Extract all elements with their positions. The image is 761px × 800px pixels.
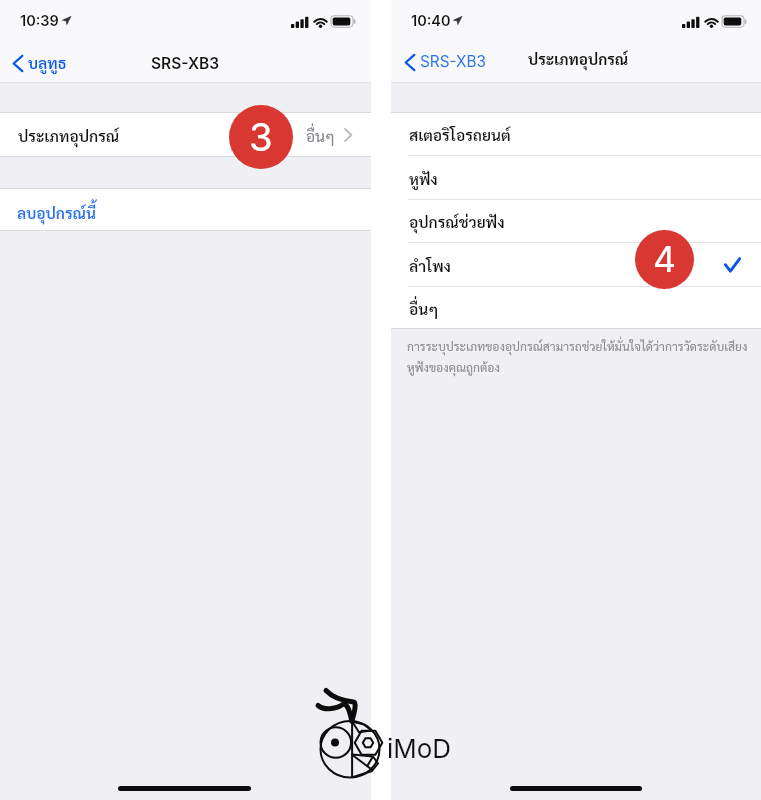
staticText: ประเภทอุปกรณ์ [528, 49, 629, 69]
button[interactable]: หูฟัง [391, 156, 761, 200]
button[interactable]: ลำโพง [391, 243, 761, 287]
other: Selected [725, 258, 740, 272]
staticText: 10:40 [411, 12, 451, 30]
staticText: iMoD [387, 733, 452, 764]
staticText: SRS-XB3 [151, 54, 220, 73]
button[interactable]: Back to บลูทูธ [0, 41, 78, 82]
button[interactable]: Back to SRS-XB3 [391, 41, 491, 82]
button[interactable]: อุปกรณ์ช่วยฟัง [391, 199, 761, 243]
button[interactable]: ประเภทอุปกรณ์ [0, 112, 371, 157]
staticText: 4 [653, 238, 676, 281]
button[interactable]: สเตอริโอรถยนต์ [391, 112, 761, 156]
button[interactable]: อื่นๆ [391, 286, 761, 330]
staticText: สเตอริโอรถยนต์ [409, 124, 511, 144]
staticText: การระบุประเภทของอุปกรณ์สามารถช่วยให้มั่น… [407, 338, 752, 375]
staticText: 10:39 [20, 12, 59, 30]
staticText: อุปกรณ์ช่วยฟัง [409, 211, 505, 231]
staticText: ประเภทอุปกรณ์ [18, 125, 120, 145]
staticText: SRS-XB3 [420, 52, 486, 71]
button[interactable]: ลบอุปกรณ์นี้ [0, 188, 371, 231]
staticText: ลำโพง [409, 255, 451, 275]
staticText: ลบอุปกรณ์นี้ [17, 202, 97, 222]
staticText: 3 [249, 114, 273, 160]
staticText: อื่นๆ [306, 125, 335, 145]
staticText: บลูทูธ [28, 52, 67, 72]
staticText: อื่นๆ [409, 298, 439, 318]
staticText: หูฟัง [409, 168, 438, 188]
